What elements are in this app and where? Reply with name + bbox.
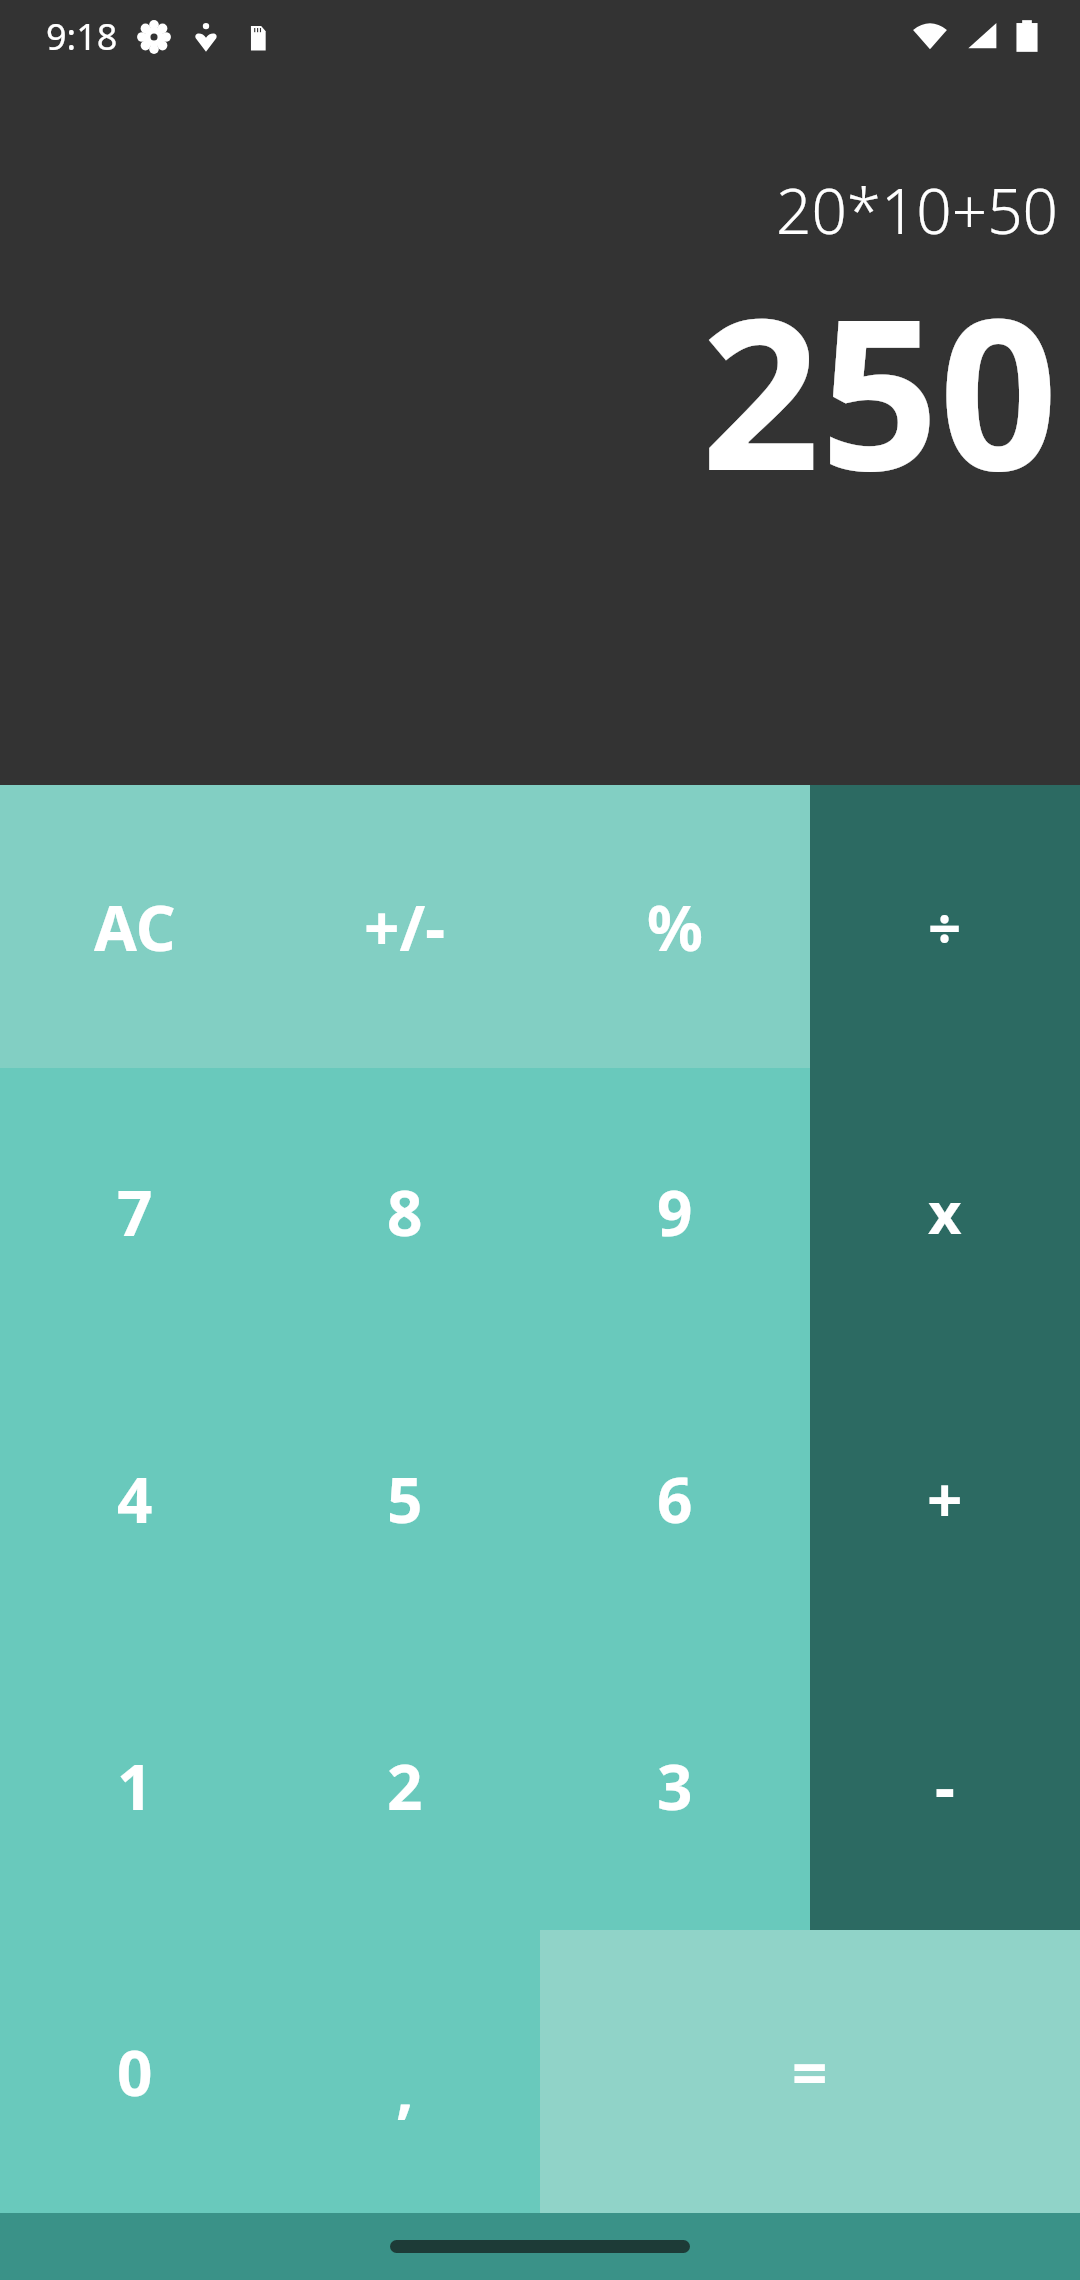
- button[interactable]: 3: [540, 1642, 810, 1930]
- button[interactable]: 8: [270, 1068, 540, 1355]
- staticText: +/-: [364, 885, 446, 969]
- staticText: 9: [657, 1170, 693, 1254]
- button[interactable]: +/-: [270, 785, 540, 1068]
- staticText: 5: [387, 1457, 423, 1541]
- button[interactable]: Multiply: [810, 1068, 1080, 1355]
- button[interactable]: 5: [270, 1355, 540, 1642]
- staticText: 8: [387, 1170, 423, 1254]
- staticText: -: [935, 1744, 955, 1828]
- button[interactable]: %: [540, 785, 810, 1068]
- staticText: 3: [657, 1744, 693, 1828]
- staticText: 6: [657, 1457, 693, 1541]
- button[interactable]: 9: [540, 1068, 810, 1355]
- staticText: 9:18: [46, 12, 118, 61]
- button[interactable]: 6: [540, 1355, 810, 1642]
- staticText: 0: [117, 2030, 153, 2114]
- staticText: =: [792, 2030, 828, 2114]
- button[interactable]: 0: [0, 1930, 270, 2213]
- button[interactable]: Divide: [810, 785, 1080, 1068]
- staticText: 250: [701, 248, 1058, 531]
- staticText: ,: [396, 2046, 414, 2130]
- button[interactable]: 1: [0, 1642, 270, 1930]
- staticText: 1: [117, 1744, 153, 1828]
- button[interactable]: ,: [270, 1930, 540, 2213]
- button[interactable]: Equals: [540, 1930, 1080, 2213]
- staticText: ÷: [928, 887, 962, 966]
- staticText: %: [647, 885, 703, 969]
- staticText: 7: [117, 1170, 153, 1254]
- button[interactable]: 2: [270, 1642, 540, 1930]
- button[interactable]: 4: [0, 1355, 270, 1642]
- button[interactable]: Minus: [810, 1642, 1080, 1930]
- button[interactable]: AC: [0, 785, 270, 1068]
- staticText: 20*10+50: [776, 168, 1058, 252]
- staticText: 2: [387, 1744, 423, 1828]
- button[interactable]: 7: [0, 1068, 270, 1355]
- staticText: 4: [117, 1457, 153, 1541]
- staticText: +: [927, 1457, 963, 1541]
- staticText: x: [928, 1172, 962, 1251]
- staticText: AC: [94, 885, 176, 969]
- button[interactable]: Plus: [810, 1355, 1080, 1642]
